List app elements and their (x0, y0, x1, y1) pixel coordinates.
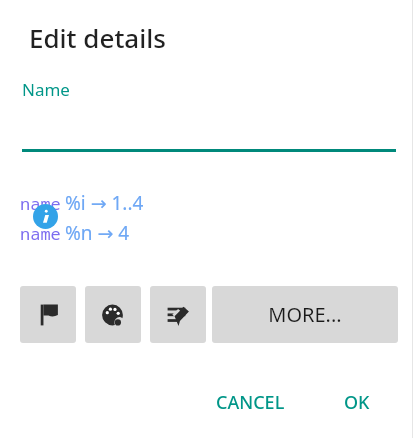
button[interactable]: Edit notes (150, 286, 206, 343)
button[interactable]: Flag (20, 286, 76, 343)
staticText: %n → 4 (65, 220, 130, 246)
staticText: name (20, 222, 61, 245)
staticText: Name (22, 78, 70, 101)
button[interactable]: CANCEL (202, 380, 299, 424)
staticText: %i → 1..4 (65, 190, 144, 216)
button[interactable]: Info (33, 204, 58, 229)
button[interactable]: OK (330, 380, 384, 424)
staticText: MORE... (268, 301, 342, 328)
staticText: name (20, 192, 61, 215)
staticText: OK (344, 390, 370, 415)
staticText: CANCEL (216, 390, 285, 415)
staticText: Edit details (29, 20, 166, 55)
button[interactable]: MORE... (212, 286, 398, 343)
button[interactable]: Colour palette (85, 286, 141, 343)
